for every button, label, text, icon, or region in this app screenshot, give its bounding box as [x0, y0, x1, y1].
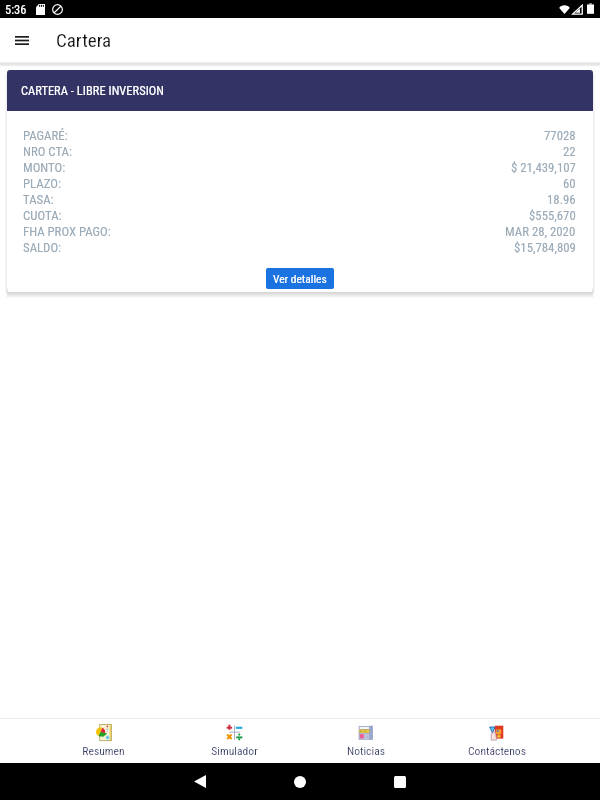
button[interactable]: Home	[250, 763, 350, 800]
staticText: $555,670	[529, 208, 576, 223]
staticText: $15,784,809	[514, 240, 576, 255]
staticText: 22	[563, 144, 576, 159]
staticText: 60	[563, 176, 576, 191]
staticText: PAGARÉ:	[23, 128, 68, 143]
staticText: Cartera	[56, 29, 112, 51]
staticText: NRO CTA:	[23, 144, 72, 159]
button[interactable]: Simulador	[169, 719, 300, 763]
staticText: TASA:	[23, 192, 54, 207]
button[interactable]: Contáctenos	[431, 719, 562, 763]
button[interactable]: Noticias	[300, 719, 431, 763]
staticText: MONTO:	[23, 160, 66, 175]
staticText: Simulador	[211, 744, 258, 758]
button[interactable]: Resumen	[38, 719, 169, 763]
button[interactable]: Recent apps	[350, 763, 450, 800]
staticText: PLAZO:	[23, 176, 61, 191]
staticText: $ 21,439,107	[511, 160, 576, 175]
button[interactable]: Open navigation menu	[7, 25, 37, 55]
staticText: FHA PROX PAGO:	[23, 224, 111, 239]
staticText: Contáctenos	[468, 744, 526, 758]
staticText: CUOTA:	[23, 208, 62, 223]
button[interactable]: Ver detalles	[266, 268, 334, 289]
staticText: Resumen	[82, 744, 125, 758]
staticText: Ver detalles	[273, 272, 327, 285]
staticText: 77028	[544, 128, 576, 143]
staticText: MAR 28, 2020	[505, 224, 576, 239]
staticText: SALDO:	[23, 240, 62, 255]
staticText: Noticias	[347, 744, 385, 758]
staticText: 18.96	[547, 192, 576, 207]
staticText: CARTERA - LIBRE INVERSION	[21, 83, 165, 98]
button[interactable]: Back	[150, 763, 250, 800]
staticText: 5:36	[5, 2, 27, 17]
